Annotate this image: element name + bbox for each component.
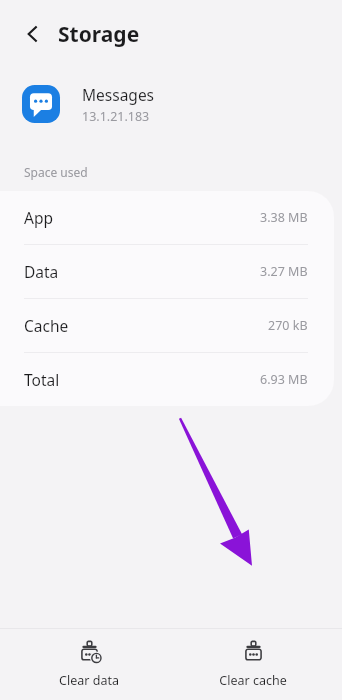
staticText: Total [24,369,60,390]
staticText: 13.1.21.183 [82,108,150,125]
staticText: 3.38 MB [260,209,308,226]
staticText: 6.93 MB [260,371,308,388]
button[interactable]: Clear data [14,634,164,695]
staticText: Storage [58,20,140,49]
button[interactable]: Clear cache [178,634,328,695]
staticText: App [24,207,53,228]
staticText: Messages [82,84,155,105]
staticText: Cache [24,315,69,336]
staticText: 270 kB [268,317,308,334]
staticText: Clear data [59,672,119,689]
staticText: 3.27 MB [260,263,308,280]
staticText: Clear cache [219,672,287,689]
button[interactable]: Back [18,19,48,49]
staticText: Space used [24,164,88,180]
staticText: Data [24,261,59,282]
button[interactable]: Total [0,353,334,406]
button[interactable]: Cache [0,299,334,353]
button[interactable]: App [0,191,334,245]
button[interactable]: Data [0,245,334,299]
